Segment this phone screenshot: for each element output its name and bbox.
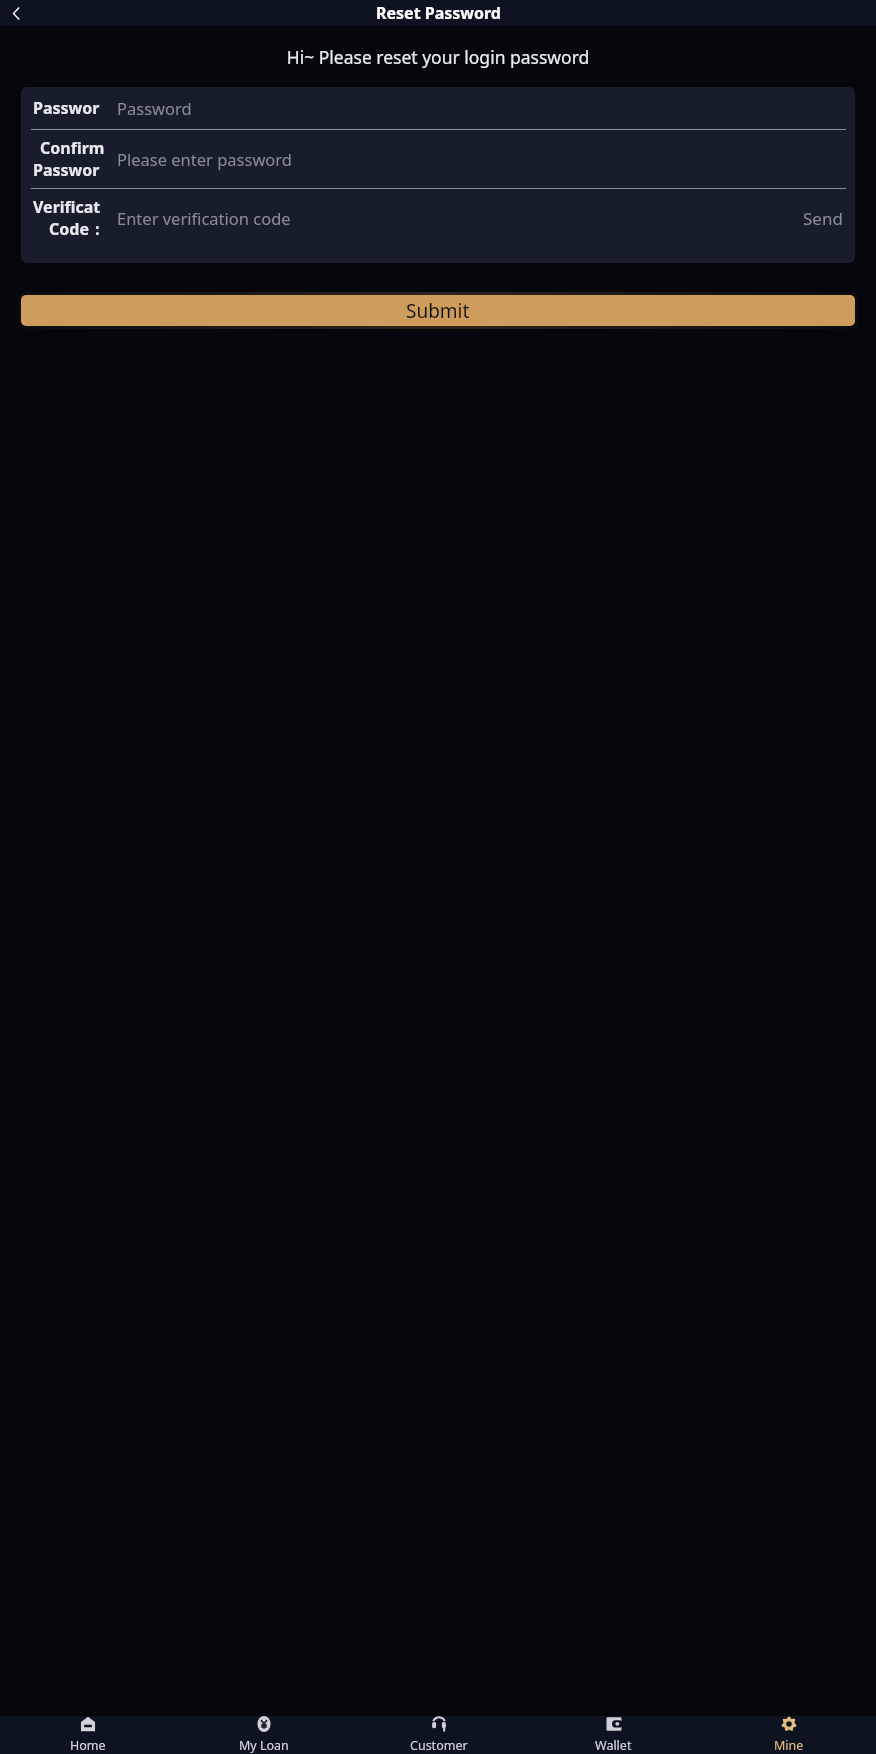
staticText: Customer — [410, 1737, 468, 1754]
button[interactable]: Send — [800, 207, 846, 230]
button[interactable]: Submit — [21, 295, 855, 326]
staticText: Wallet — [595, 1737, 632, 1754]
button[interactable]: Customer — [351, 1716, 526, 1754]
staticText: Please enter password — [117, 148, 846, 170]
button[interactable]: Wallet — [526, 1716, 701, 1754]
button[interactable]: Password： — [21, 87, 855, 129]
staticText: Password： — [33, 97, 105, 119]
staticText: Send — [803, 207, 843, 230]
staticText: Confirm — [40, 137, 105, 159]
staticText: Mine — [774, 1737, 804, 1754]
staticText: Verification — [33, 196, 105, 218]
staticText: Code： — [49, 218, 105, 240]
button[interactable]: Confirm — [21, 130, 855, 188]
staticText: Enter verification code — [117, 207, 800, 229]
button[interactable]: Mine — [701, 1716, 876, 1754]
staticText: Submit — [406, 298, 470, 324]
button[interactable]: My Loan — [176, 1716, 351, 1754]
button[interactable]: Verification — [21, 189, 855, 247]
staticText: Reset Password — [376, 2, 501, 24]
staticText: My Loan — [239, 1737, 289, 1754]
staticText: Password — [117, 97, 846, 119]
button[interactable]: Back — [3, 0, 29, 26]
staticText: Password： — [33, 159, 105, 181]
staticText: Home — [70, 1737, 106, 1754]
staticText: Hi~ Please reset your login password — [0, 45, 876, 69]
button[interactable]: Home — [0, 1716, 176, 1754]
